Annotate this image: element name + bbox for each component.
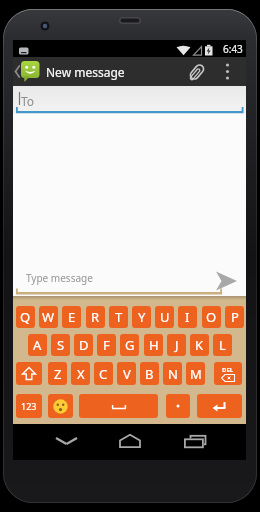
button[interactable]: Q (16, 306, 35, 328)
staticText: N (168, 365, 178, 383)
button[interactable] (16, 362, 42, 385)
staticText: 6:43 (223, 42, 243, 56)
button[interactable] (110, 429, 150, 453)
button[interactable]: X (71, 362, 90, 385)
staticText: A (33, 336, 42, 354)
button[interactable]: I (178, 306, 197, 328)
staticText: W (42, 308, 55, 326)
button[interactable]: U (155, 306, 174, 328)
button[interactable]: T (109, 306, 128, 328)
button[interactable]: K (190, 334, 209, 356)
button[interactable]: Z (48, 362, 67, 385)
staticText: O (206, 308, 217, 326)
button[interactable]: F (97, 334, 116, 356)
staticText: M (190, 365, 202, 383)
button[interactable] (21, 61, 44, 83)
button[interactable]: P (225, 306, 244, 328)
staticText: E (68, 308, 76, 326)
staticText: To (21, 93, 35, 109)
staticText: Type message (26, 271, 93, 285)
button[interactable] (46, 429, 86, 453)
staticText: Z (54, 365, 62, 383)
staticText: V (123, 365, 131, 383)
button[interactable] (79, 394, 158, 418)
button[interactable] (184, 59, 210, 85)
staticText: DEL (222, 366, 234, 374)
button[interactable]: R (86, 306, 105, 328)
button[interactable] (175, 429, 215, 453)
button[interactable]: Y (132, 306, 151, 328)
button[interactable]: W (39, 306, 58, 328)
button[interactable]: V (117, 362, 136, 385)
staticText: 123 (21, 400, 37, 412)
button[interactable] (48, 394, 73, 418)
button[interactable]: G (120, 334, 139, 356)
staticText: P (231, 308, 239, 326)
button[interactable] (197, 394, 242, 418)
staticText: B (145, 365, 154, 383)
staticText: New message (46, 64, 125, 80)
button[interactable]: J (167, 334, 186, 356)
button[interactable] (214, 57, 241, 86)
button[interactable]: A (28, 334, 47, 356)
button[interactable]: H (144, 334, 163, 356)
staticText: L (219, 336, 226, 354)
button[interactable] (166, 394, 190, 418)
staticText: I (185, 308, 190, 326)
staticText: K (195, 336, 204, 354)
button[interactable]: 123 (16, 394, 42, 418)
staticText: C (99, 365, 108, 383)
staticText: S (57, 336, 65, 354)
staticText: D (79, 336, 89, 354)
staticText: H (149, 336, 159, 354)
button[interactable]: B (140, 362, 159, 385)
staticText: X (77, 365, 85, 383)
button[interactable]: C (94, 362, 113, 385)
staticText: R (91, 308, 100, 326)
button[interactable]: M (186, 362, 205, 385)
button[interactable]: E (62, 306, 81, 328)
staticText: J (175, 336, 179, 354)
staticText: Q (20, 308, 31, 326)
button[interactable]: N (163, 362, 182, 385)
button[interactable]: O (202, 306, 221, 328)
staticText: F (103, 336, 110, 354)
staticText: G (125, 336, 135, 354)
button[interactable]: To (13, 86, 246, 114)
staticText: U (160, 308, 170, 326)
button[interactable]: D (74, 334, 93, 356)
button[interactable]: DEL (214, 362, 242, 385)
button[interactable]: L (213, 334, 232, 356)
button[interactable]: S (51, 334, 70, 356)
button[interactable]: Type message (13, 262, 246, 296)
staticText: T (115, 308, 123, 326)
staticText: Y (138, 308, 146, 326)
